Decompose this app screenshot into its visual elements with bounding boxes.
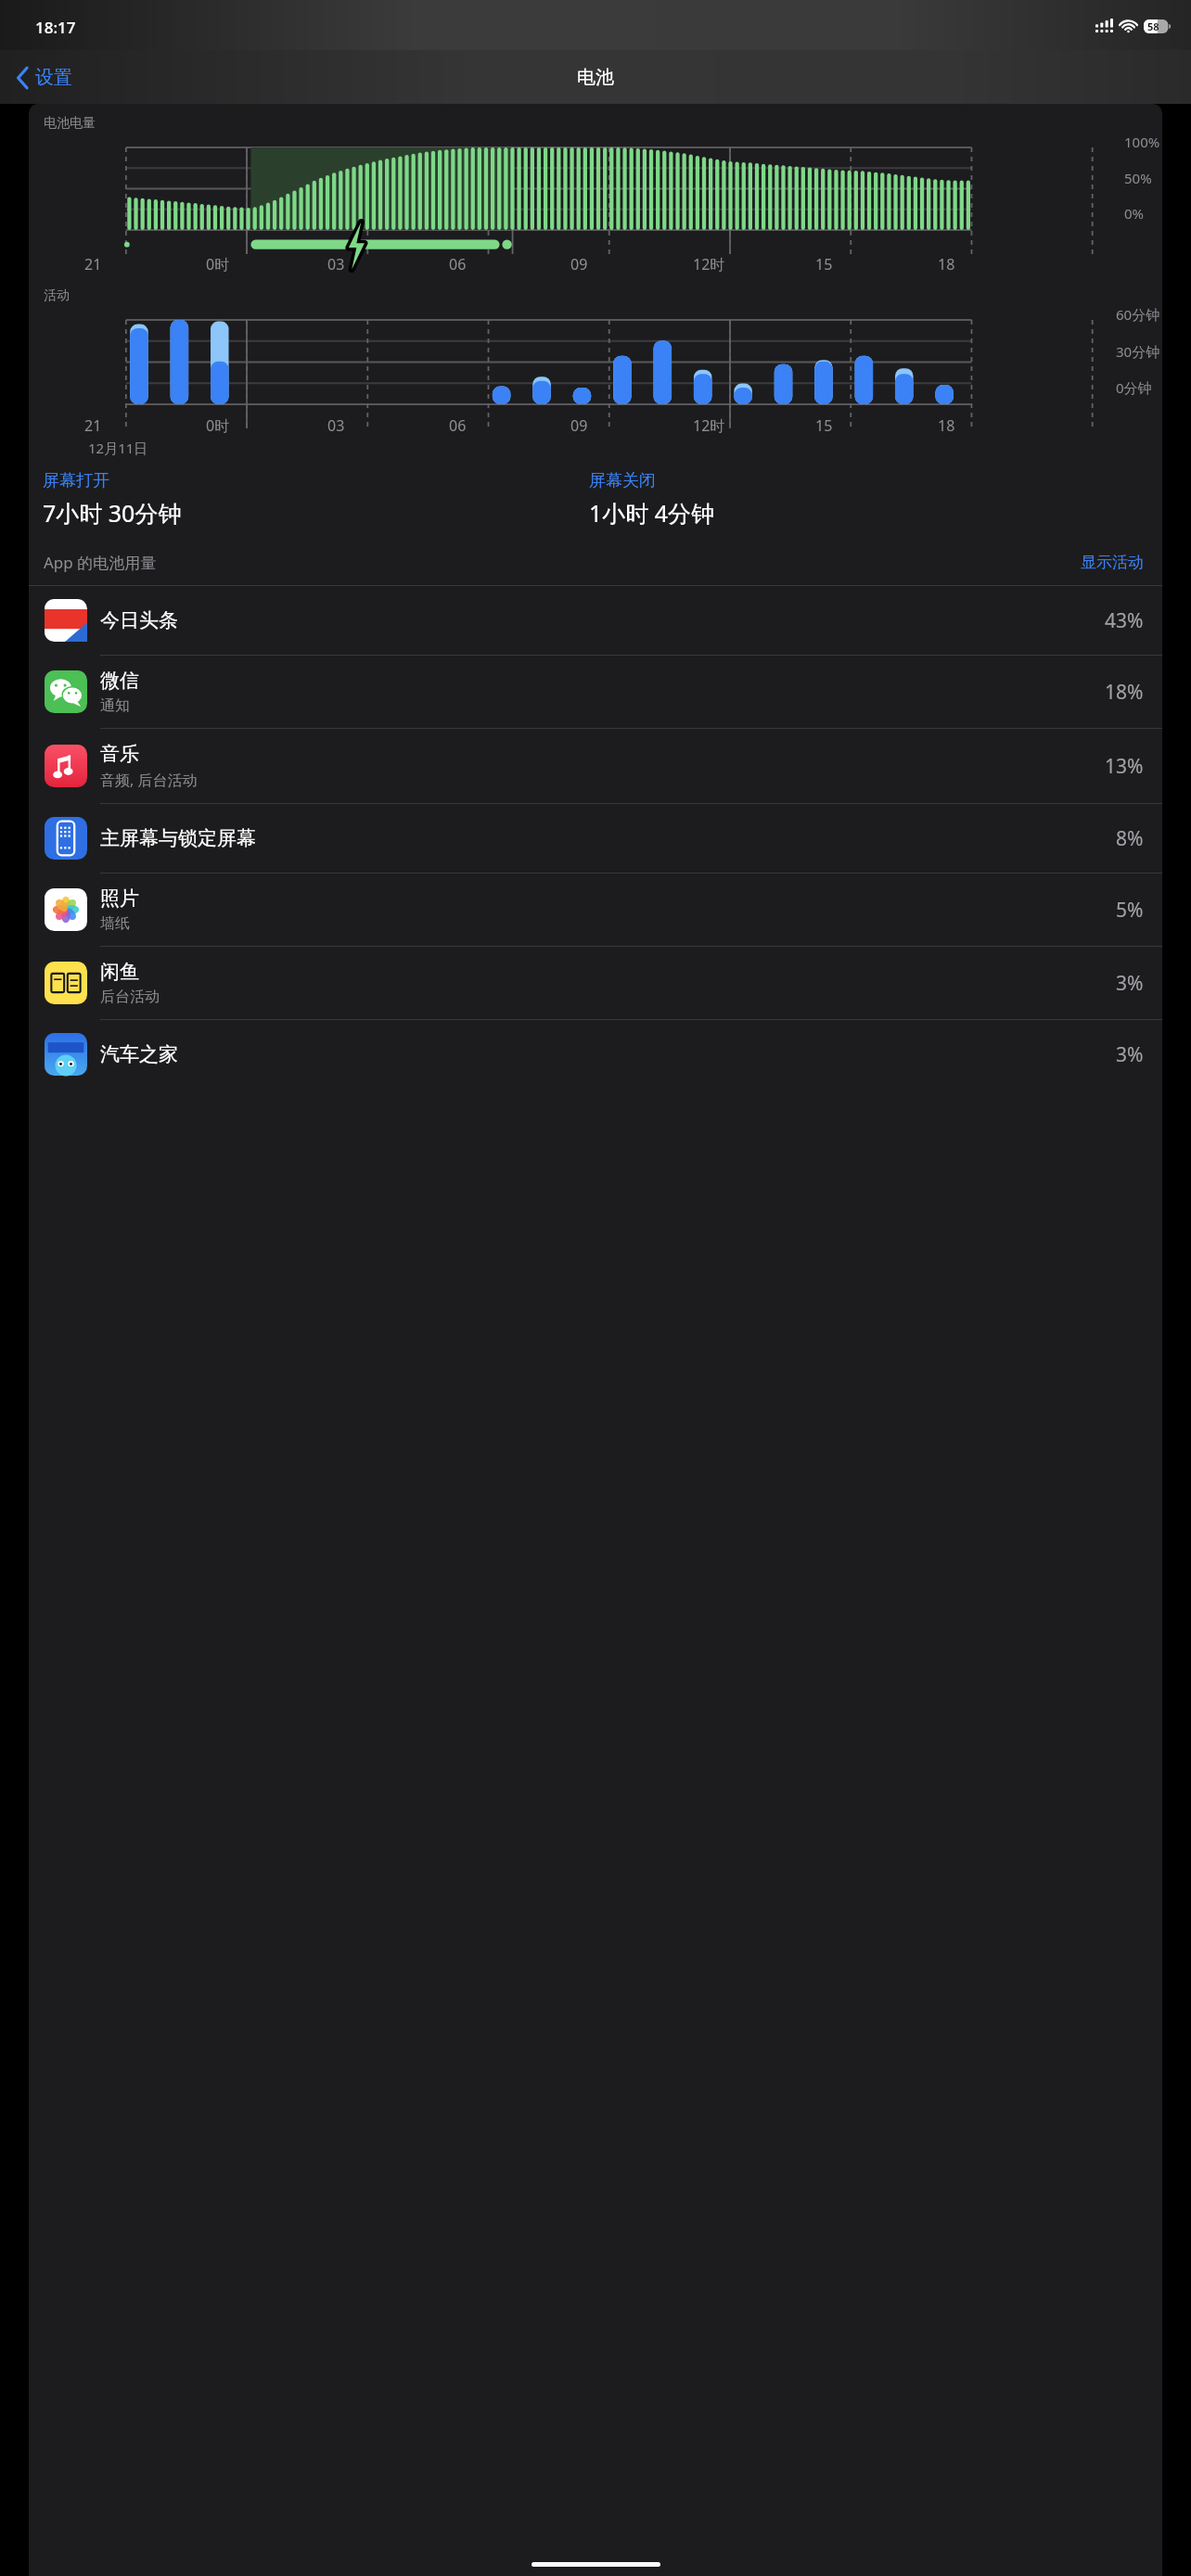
button[interactable]: 微信 bbox=[29, 656, 1162, 728]
staticText: 18 bbox=[938, 254, 955, 274]
staticText: 微信 bbox=[100, 669, 139, 693]
staticText: 5% bbox=[1116, 897, 1144, 924]
staticText: 0时 bbox=[206, 415, 230, 436]
staticText: 03 bbox=[327, 415, 345, 436]
staticText: 0分钟 bbox=[1116, 378, 1152, 397]
staticText: 18% bbox=[1105, 679, 1144, 706]
staticText: 屏幕打开 bbox=[43, 470, 109, 491]
staticText: 显示活动 bbox=[1081, 553, 1144, 572]
staticText: 03 bbox=[327, 254, 345, 274]
staticText: 60分钟 bbox=[1116, 305, 1160, 324]
button[interactable]: 照片 bbox=[29, 874, 1162, 946]
staticText: 音乐 bbox=[100, 742, 139, 766]
staticText: 3% bbox=[1116, 970, 1144, 997]
staticText: 主屏幕与锁定屏幕 bbox=[100, 826, 256, 850]
staticText: 通知 bbox=[100, 696, 130, 715]
button[interactable]: 今日头条 bbox=[29, 586, 1162, 655]
staticText: 06 bbox=[449, 415, 467, 436]
staticText: 电池 bbox=[577, 66, 614, 89]
staticText: 0时 bbox=[206, 254, 230, 274]
button[interactable]: 闲鱼 bbox=[29, 947, 1162, 1019]
staticText: 12时 bbox=[693, 254, 725, 274]
staticText: 屏幕关闭 bbox=[589, 470, 656, 491]
staticText: App 的电池用量 bbox=[44, 552, 157, 573]
staticText: 43% bbox=[1105, 607, 1144, 634]
button[interactable]: 汽车之家 bbox=[29, 1020, 1162, 1089]
staticText: 照片 bbox=[100, 886, 139, 911]
staticText: 1小时 4分钟 bbox=[589, 497, 715, 529]
staticText: 15 bbox=[815, 415, 833, 436]
other: Back bbox=[17, 67, 29, 89]
staticText: 墙纸 bbox=[100, 914, 130, 933]
staticText: 电池电量 bbox=[44, 115, 96, 132]
button[interactable]: 音乐 bbox=[29, 729, 1162, 803]
staticText: 09 bbox=[570, 254, 588, 274]
staticText: 后台活动 bbox=[100, 988, 160, 1006]
staticText: 今日头条 bbox=[100, 608, 178, 632]
staticText: 12时 bbox=[693, 415, 725, 436]
button[interactable]: 显示活动 bbox=[1077, 549, 1147, 576]
staticText: 活动 bbox=[44, 287, 70, 304]
staticText: 设置 bbox=[35, 66, 72, 89]
staticText: 100% bbox=[1124, 133, 1160, 151]
staticText: 8% bbox=[1116, 825, 1144, 852]
staticText: 音频, 后台活动 bbox=[100, 770, 198, 790]
staticText: 30分钟 bbox=[1116, 342, 1160, 361]
staticText: 06 bbox=[449, 254, 467, 274]
staticText: 3% bbox=[1116, 1041, 1144, 1068]
staticText: 09 bbox=[570, 415, 588, 436]
staticText: 18:17 bbox=[35, 17, 76, 38]
staticText: 闲鱼 bbox=[100, 960, 139, 984]
staticText: 12月11日 bbox=[88, 439, 148, 457]
staticText: 21 bbox=[84, 254, 102, 274]
staticText: 7小时 30分钟 bbox=[43, 497, 182, 529]
button[interactable]: 主屏幕与锁定屏幕 bbox=[29, 804, 1162, 873]
staticText: 13% bbox=[1105, 753, 1144, 780]
staticText: 58 bbox=[1147, 19, 1159, 33]
staticText: 15 bbox=[815, 254, 833, 274]
staticText: 21 bbox=[84, 415, 102, 436]
staticText: 0% bbox=[1124, 204, 1145, 223]
staticText: 汽车之家 bbox=[100, 1042, 178, 1066]
staticText: 18 bbox=[938, 415, 955, 436]
staticText: 50% bbox=[1124, 169, 1152, 187]
button[interactable]: Back bbox=[11, 58, 78, 96]
